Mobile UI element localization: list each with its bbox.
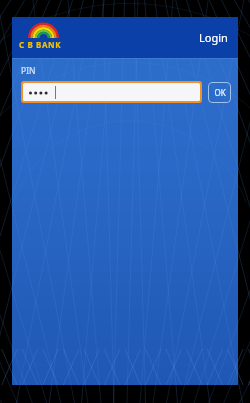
button[interactable]: CB Bank logo (19, 25, 62, 50)
staticText: C B BANK (19, 39, 62, 50)
other: CB Bank logo (28, 25, 59, 38)
button[interactable]: Login (189, 24, 238, 51)
button[interactable]: OK (208, 82, 231, 103)
staticText: OK (214, 87, 226, 98)
staticText: Login (199, 30, 228, 45)
button[interactable]: PIN entry field (23, 83, 200, 101)
staticText: PIN (21, 65, 36, 77)
